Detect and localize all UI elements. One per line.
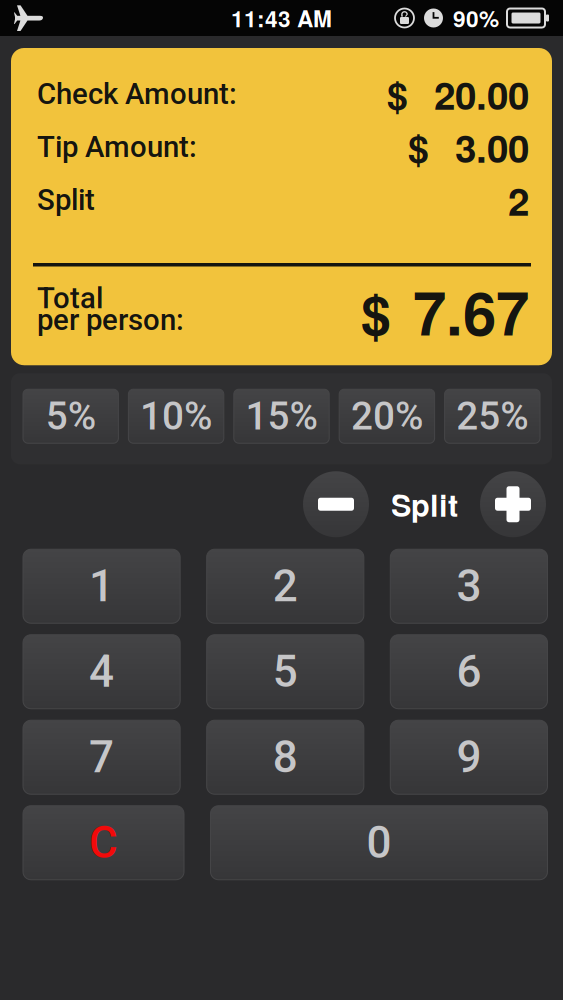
button[interactable]: 1: [23, 549, 180, 623]
staticText: 4: [89, 653, 114, 690]
staticText: 7: [89, 739, 114, 776]
staticText: C: [89, 824, 118, 861]
button[interactable]: Decrease split: [303, 471, 369, 537]
staticText: 20.00: [434, 66, 529, 122]
button[interactable]: 25%: [445, 389, 540, 443]
button[interactable]: 9: [390, 720, 547, 794]
button[interactable]: 3: [390, 549, 547, 623]
button[interactable]: 7: [23, 720, 180, 794]
staticText: 5%: [46, 400, 96, 432]
staticText: $: [408, 120, 429, 174]
staticText: 1: [89, 568, 114, 605]
staticText: 3.00: [455, 119, 529, 175]
button[interactable]: 2: [207, 549, 364, 623]
staticText: 3: [456, 568, 481, 605]
button[interactable]: 10%: [128, 389, 224, 443]
staticText: 6: [456, 653, 481, 690]
staticText: 5: [273, 653, 298, 690]
staticText: 10%: [140, 400, 212, 432]
staticText: 9: [456, 739, 481, 776]
staticText: 90%: [453, 2, 499, 34]
staticText: 2: [273, 568, 298, 605]
staticText: 11:43 AM: [231, 2, 332, 34]
staticText: 8: [273, 739, 298, 776]
button[interactable]: 20%: [339, 389, 435, 443]
button[interactable]: 0: [210, 806, 547, 880]
staticText: 7.67: [413, 276, 529, 345]
staticText: 20%: [351, 400, 423, 432]
staticText: Split: [37, 183, 95, 217]
staticText: $: [361, 282, 391, 344]
staticText: Check Amount:: [37, 77, 237, 111]
staticText: $: [387, 67, 408, 121]
staticText: 0: [366, 824, 391, 861]
staticText: Total: [37, 287, 103, 309]
button[interactable]: 6: [390, 635, 547, 709]
button[interactable]: 8: [207, 720, 364, 794]
button[interactable]: 15%: [234, 389, 329, 443]
button[interactable]: 5: [207, 635, 364, 709]
staticText: Split: [391, 482, 458, 526]
button[interactable]: C: [23, 806, 184, 880]
staticText: 2: [508, 172, 529, 228]
staticText: Tip Amount:: [37, 130, 197, 164]
button[interactable]: 4: [23, 635, 180, 709]
staticText: 25%: [456, 400, 528, 432]
staticText: per person:: [37, 309, 184, 331]
button[interactable]: Increase split: [480, 471, 546, 537]
button[interactable]: 5%: [23, 389, 118, 443]
staticText: 15%: [245, 400, 317, 432]
